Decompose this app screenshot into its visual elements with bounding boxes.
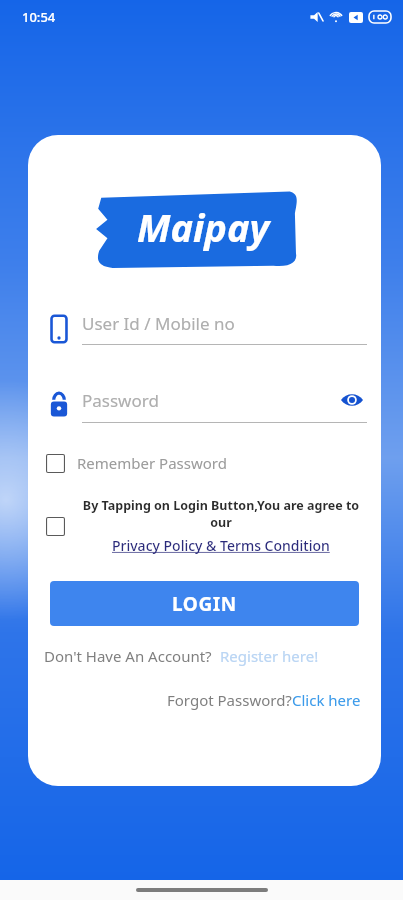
staticText: Don't Have An Account? [44,646,212,666]
staticText: Register here! [220,646,319,666]
staticText: By Tapping on Login Button,You are agree… [75,497,367,530]
staticText: User Id / Mobile no [82,312,235,335]
button[interactable]: LOGIN [50,581,359,626]
staticText: Click here [292,690,361,710]
staticText: Password [82,389,337,412]
button[interactable]: Remember Password [46,453,227,473]
button[interactable]: Privacy Policy & Terms Condition [112,536,330,555]
button[interactable] [46,517,65,536]
staticText: Remember Password [77,453,227,473]
staticText: Privacy Policy & Terms Condition [112,536,330,555]
staticText: Forgot Password? [167,690,292,710]
button[interactable]: Click here [292,690,361,710]
staticText: LOGIN [172,591,237,617]
button[interactable]: Register here! [220,646,319,666]
button[interactable]: Show password [337,385,367,415]
staticText: Maipay [137,201,270,253]
staticText: 10:54 [22,8,56,26]
